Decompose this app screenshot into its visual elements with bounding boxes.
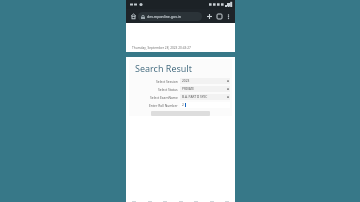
button[interactable]: dev.mponline.gov.in: [141, 12, 199, 21]
button[interactable]: 2: [180, 102, 230, 108]
staticText: PRIVATE: [182, 87, 226, 91]
button[interactable]: PRIVATE: [180, 86, 230, 92]
staticText: Search Result: [135, 62, 232, 74]
button[interactable]: 2023: [180, 78, 230, 84]
button[interactable]: Home: [129, 12, 138, 21]
button[interactable]: More options: [224, 12, 232, 20]
button[interactable]: New tab: [205, 12, 213, 20]
staticText: dev.mponline.gov.in: [147, 14, 181, 19]
staticText: 2: [182, 103, 184, 107]
staticText: Select ExamName: [150, 95, 178, 99]
staticText: Select Status: [158, 87, 178, 91]
staticText: Enter Roll Number: [149, 103, 178, 107]
button[interactable]: B.A. PART II SYEC: [180, 94, 230, 100]
staticText: Select Session: [156, 79, 178, 83]
staticText: B.A. PART II SYEC: [182, 95, 226, 99]
staticText: 2023: [182, 79, 226, 83]
button[interactable]: Tabs: [215, 12, 223, 20]
staticText: Thursday, September 28, 2023 20:43:27: [132, 46, 191, 50]
